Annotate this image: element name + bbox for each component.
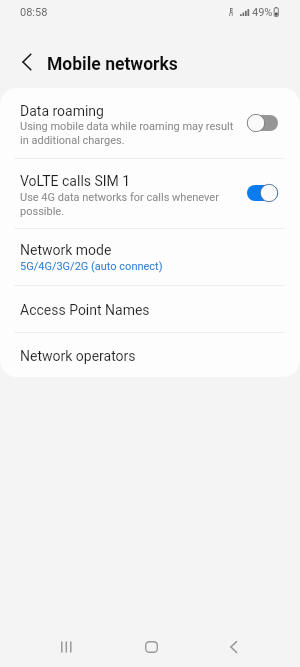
- button[interactable]: Switch on: [246, 183, 279, 203]
- button[interactable]: Recent apps: [44, 625, 88, 667]
- button[interactable]: Data roaming: [0, 88, 300, 158]
- staticText: Access Point Names: [20, 302, 150, 318]
- staticText: 49%: [252, 6, 273, 19]
- staticText: VoLTE calls SIM 1: [20, 173, 131, 189]
- button[interactable]: Access Point Names: [0, 285, 300, 332]
- staticText: Network mode: [20, 242, 112, 258]
- staticText: Use 4G data networks for calls whenever …: [20, 191, 219, 218]
- staticText: Data roaming: [20, 103, 104, 119]
- button[interactable]: Navigate up: [12, 48, 40, 76]
- button[interactable]: VoLTE calls SIM 1: [0, 158, 300, 228]
- button[interactable]: Network mode: [0, 228, 300, 285]
- button[interactable]: Back: [212, 625, 256, 667]
- button[interactable]: Network operators: [0, 332, 300, 377]
- button[interactable]: Home: [129, 625, 173, 667]
- staticText: Mobile networks: [47, 54, 178, 75]
- staticText: Using mobile data while roaming may resu…: [20, 120, 234, 147]
- staticText: 08:58: [20, 6, 48, 19]
- staticText: 5G/4G/3G/2G (auto connect): [20, 260, 163, 273]
- button[interactable]: Switch off: [246, 113, 279, 133]
- staticText: Network operators: [20, 348, 136, 364]
